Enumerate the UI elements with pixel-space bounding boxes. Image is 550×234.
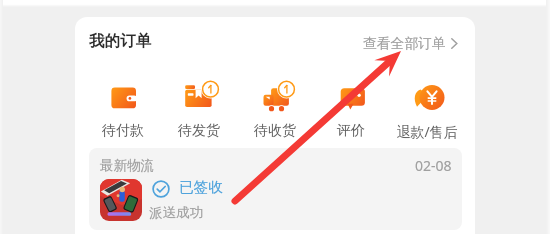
staticText: 最新物流	[100, 157, 154, 174]
staticText: 待付款	[102, 122, 144, 140]
staticText: 待发货	[178, 122, 220, 140]
button[interactable]: 我的订单	[89, 31, 151, 51]
staticText: 待收货	[254, 122, 296, 140]
button[interactable]: 待付款	[85, 82, 161, 140]
button[interactable]: 评价	[313, 82, 389, 140]
staticText: 我的订单	[89, 31, 151, 51]
staticText: 已签收	[179, 178, 223, 196]
button[interactable]: 查看全部订单	[363, 33, 458, 53]
staticText: 退款/售后	[396, 122, 458, 141]
button[interactable]: 退款/售后	[389, 82, 465, 141]
staticText: 派送成功	[149, 204, 203, 221]
button[interactable]: 待发货	[161, 82, 237, 140]
staticText: 查看全部订单	[363, 35, 446, 52]
button[interactable]: 待收货	[237, 82, 313, 140]
staticText: 评价	[337, 122, 365, 140]
staticText: 02-08	[415, 156, 452, 175]
button[interactable]: 最新物流	[89, 148, 462, 230]
